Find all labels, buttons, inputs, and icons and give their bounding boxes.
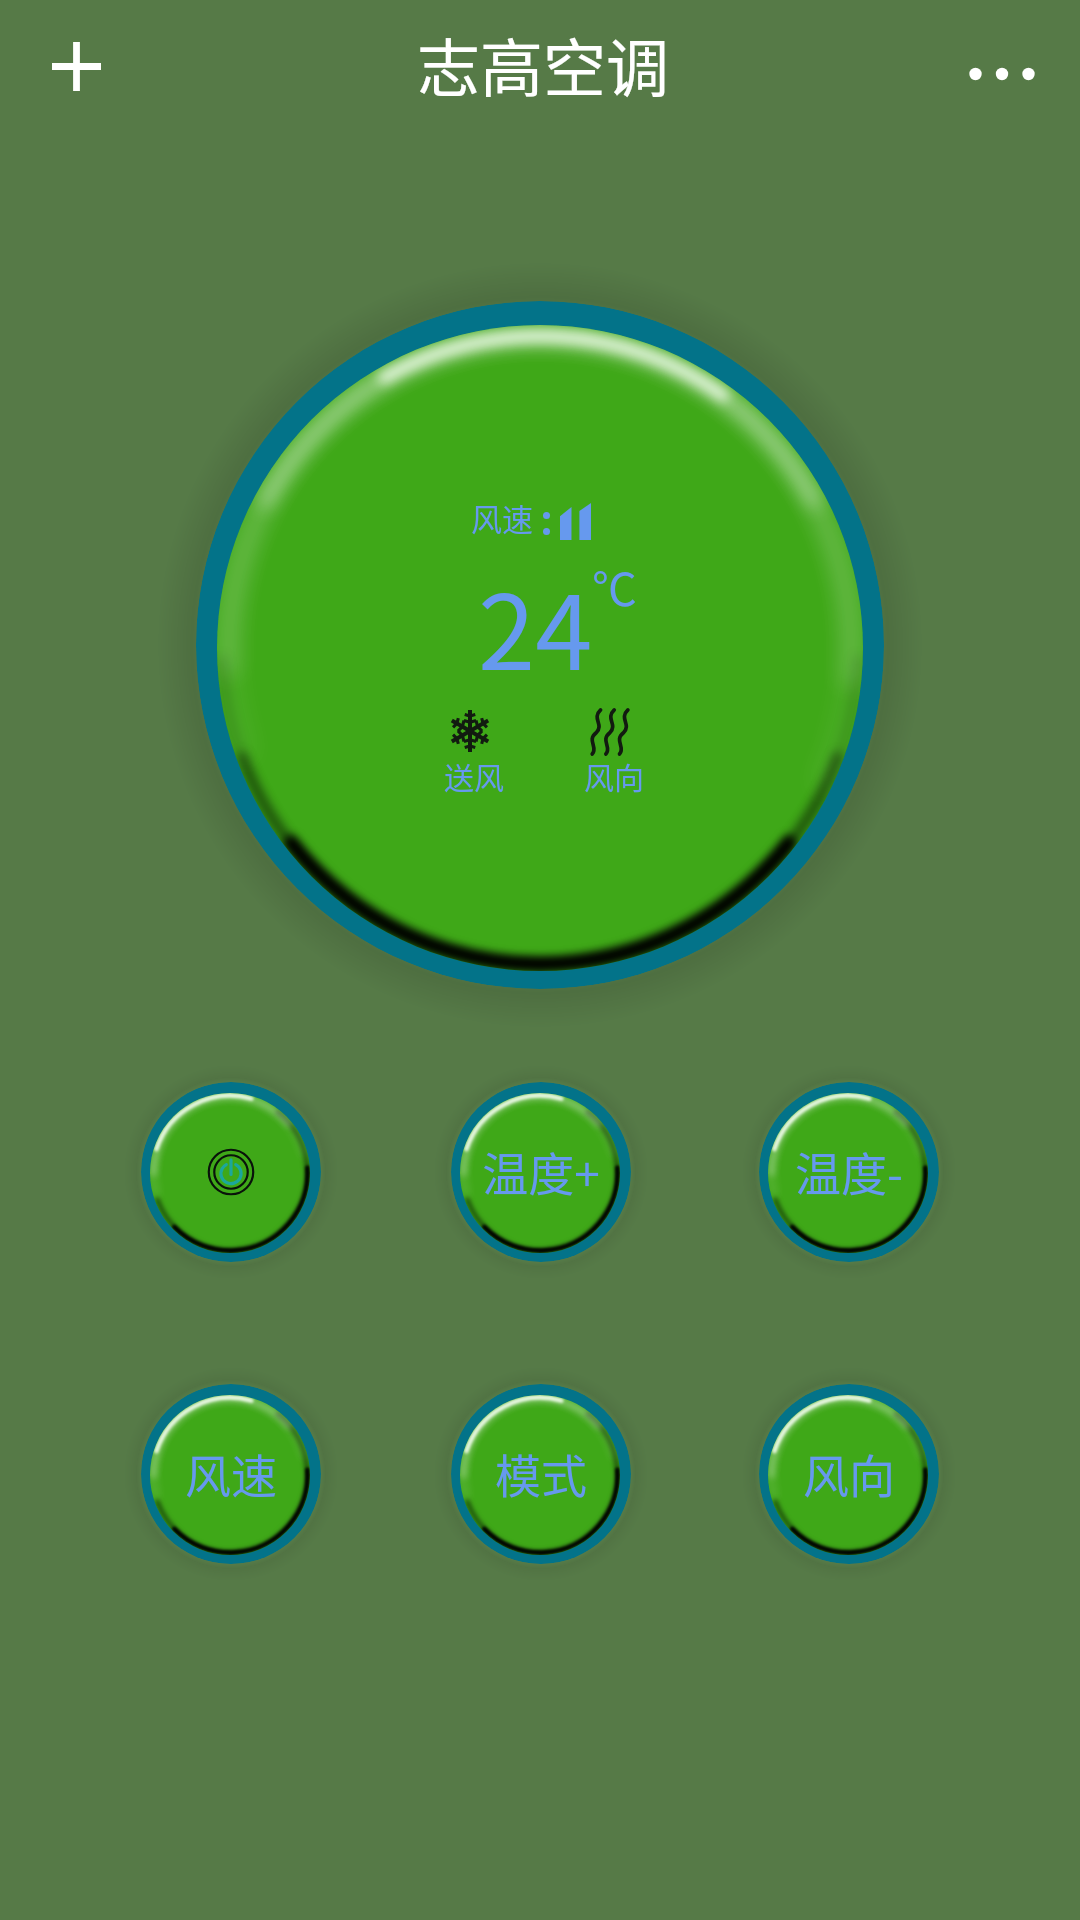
- button[interactable]: Add device: [12, 2, 140, 130]
- button[interactable]: 风速: [196, 301, 884, 989]
- staticText: 温度+: [482, 1138, 600, 1205]
- staticText: 24: [478, 551, 593, 700]
- staticText: ℃: [592, 554, 638, 619]
- button[interactable]: Power: [141, 1082, 321, 1262]
- staticText: 风向: [803, 1440, 895, 1507]
- staticText: 志高空调: [417, 18, 669, 109]
- staticText: 温度-: [795, 1138, 903, 1205]
- button[interactable]: 温度-: [759, 1082, 939, 1262]
- button[interactable]: 风速: [141, 1384, 321, 1564]
- staticText: 送风: [444, 754, 504, 797]
- button[interactable]: 温度+: [451, 1082, 631, 1262]
- button[interactable]: 风向: [759, 1384, 939, 1564]
- staticText: 风向: [584, 754, 644, 797]
- staticText: 风速: [471, 495, 533, 540]
- staticText: 风速: [185, 1440, 277, 1507]
- button[interactable]: 模式: [451, 1384, 631, 1564]
- staticText: 模式: [495, 1440, 587, 1507]
- button[interactable]: More options: [938, 10, 1066, 138]
